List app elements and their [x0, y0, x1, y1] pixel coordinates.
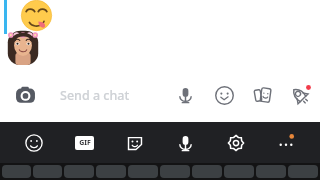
- button[interactable]: [224, 165, 254, 178]
- button[interactable]: Settings: [219, 126, 253, 160]
- button[interactable]: Emoji: [17, 126, 51, 160]
- button[interactable]: Stickers: [118, 126, 152, 160]
- button[interactable]: Stickers: [209, 80, 239, 110]
- button[interactable]: [288, 165, 318, 178]
- button[interactable]: [2, 165, 31, 178]
- button[interactable]: [33, 165, 62, 178]
- staticText: GIF: [79, 138, 91, 148]
- button[interactable]: Voice note: [170, 80, 200, 110]
- button[interactable]: [160, 165, 190, 178]
- button[interactable]: [128, 165, 158, 178]
- button[interactable]: [256, 165, 286, 178]
- button[interactable]: [64, 165, 94, 178]
- button[interactable]: Voice input: [168, 126, 202, 160]
- staticText: Send a chat: [60, 87, 130, 104]
- button[interactable]: Camera: [10, 80, 40, 110]
- button[interactable]: [192, 165, 222, 178]
- button[interactable]: [96, 165, 126, 178]
- button[interactable]: Send a chat: [60, 78, 170, 112]
- button[interactable]: More options: [269, 126, 303, 160]
- button[interactable]: Rocket: [285, 80, 315, 110]
- button[interactable]: Cameos: [248, 80, 278, 110]
- button[interactable]: GIF: [67, 126, 101, 160]
